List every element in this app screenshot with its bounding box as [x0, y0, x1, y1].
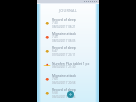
button[interactable]: Migraine attack [37, 72, 99, 86]
staticText: JOURNAL [59, 8, 77, 13]
staticText: 06/04/2017 20:58 [52, 81, 76, 85]
button[interactable]: Record of sleep [37, 86, 99, 100]
staticText: 08/04/2017 08:21 [52, 25, 76, 29]
staticText: Record of sleep [52, 17, 76, 21]
staticText: 7:25 [52, 35, 58, 39]
staticText: 7:05 [52, 77, 58, 81]
staticText: 07/04/2017 23:11 [52, 53, 76, 57]
button[interactable]: Add entry [67, 91, 74, 98]
staticText: 06/04/2017 09:14 [52, 95, 76, 99]
button[interactable]: Nurofen Plus tablet 1 pc [37, 58, 99, 72]
button[interactable]: Record of sleep [37, 44, 99, 58]
staticText: 06/04/2017 21:30 [52, 65, 76, 69]
button[interactable]: Migraine attack [37, 30, 99, 44]
staticText: 6:47 [52, 49, 58, 53]
staticText: Record of sleep [52, 87, 76, 91]
staticText: Record of sleep [52, 45, 76, 49]
staticText: Migraine attack [52, 73, 77, 77]
staticText: 5:58 [52, 91, 58, 95]
staticText: 7:30 [52, 21, 58, 25]
button[interactable]: Record of sleep [37, 16, 99, 30]
staticText: Migraine attack [52, 31, 77, 35]
staticText: Nurofen Plus tablet 1 pc [52, 61, 90, 65]
staticText: 08/04/2017 08:05 [52, 39, 76, 43]
